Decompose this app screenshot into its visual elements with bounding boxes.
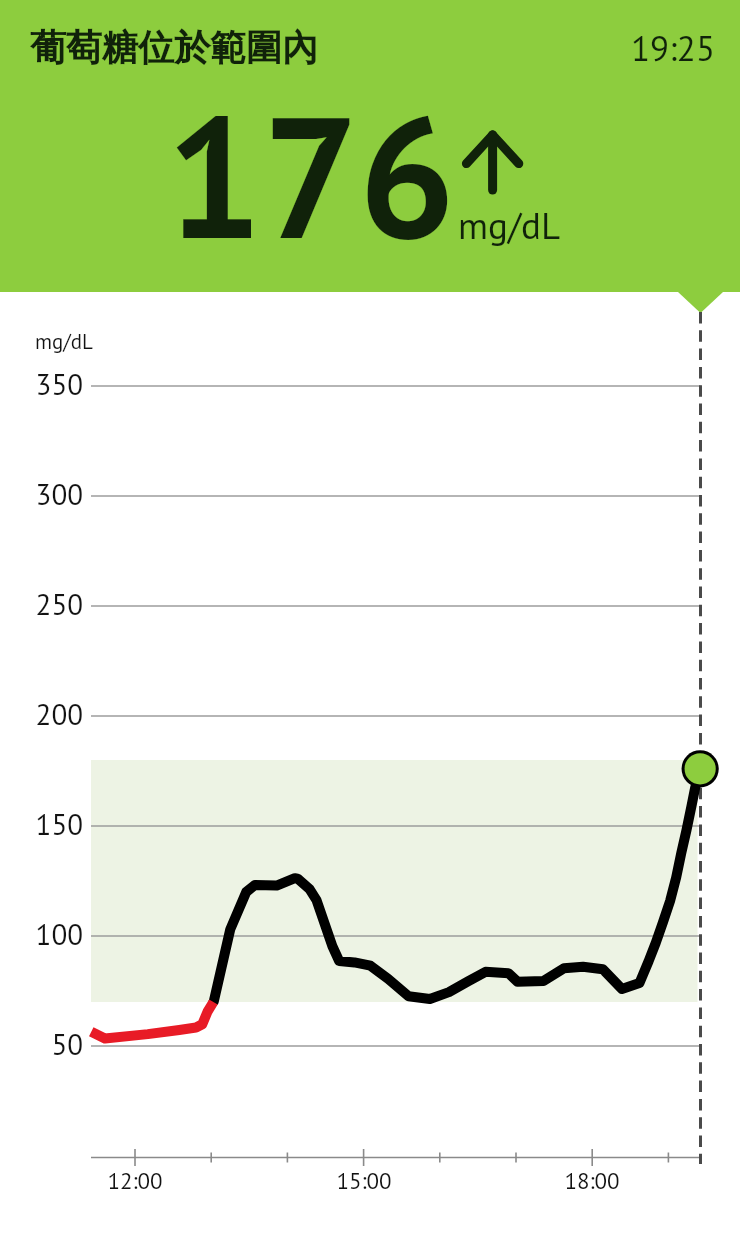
staticText: 50 [20, 1025, 83, 1063]
staticText: mg/dL [35, 328, 93, 355]
staticText: 300 [20, 475, 83, 513]
staticText: 250 [20, 585, 83, 623]
button[interactable]: Glucose rising [455, 125, 535, 205]
staticText: 18:00 [532, 1166, 652, 1196]
staticText: 150 [20, 805, 83, 843]
staticText: 176 [166, 65, 456, 285]
staticText: 200 [20, 695, 83, 733]
staticText: 19:25 [631, 25, 715, 70]
staticText: 100 [20, 915, 83, 953]
staticText: 350 [20, 365, 83, 403]
staticText: 15:00 [304, 1166, 424, 1196]
staticText: mg/dL [458, 201, 561, 249]
staticText: 葡萄糖位於範圍內 [30, 25, 318, 70]
button[interactable]: 葡萄糖位於範圍內 [0, 0, 740, 292]
staticText: 12:00 [75, 1166, 195, 1196]
